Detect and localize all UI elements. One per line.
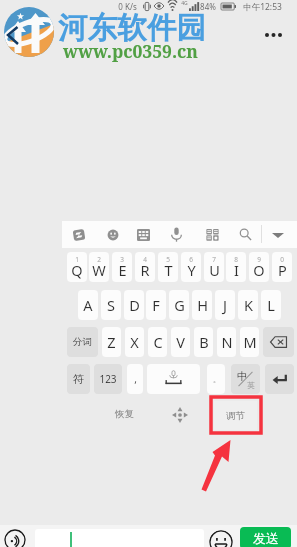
button[interactable]: Voice input — [163, 221, 189, 248]
staticText: 2 — [97, 255, 101, 264]
button[interactable]: E — [112, 252, 132, 282]
button[interactable]: M — [240, 327, 259, 357]
staticText: O — [253, 260, 265, 280]
button[interactable]: 恢复 — [108, 404, 140, 424]
staticText: P — [278, 260, 287, 280]
staticText: 河东软件园 — [58, 10, 206, 47]
button[interactable]: comma — [127, 364, 143, 394]
button[interactable]: D — [124, 290, 144, 320]
button[interactable]: U — [204, 252, 224, 282]
button[interactable]: I — [226, 252, 246, 282]
button[interactable]: G — [169, 290, 189, 320]
staticText: 英 — [247, 381, 255, 390]
button[interactable]: Backspace — [263, 327, 294, 357]
button[interactable]: L — [261, 290, 281, 320]
button[interactable]: period — [207, 364, 225, 394]
staticText: D — [129, 295, 140, 315]
staticText: 发送 — [253, 530, 279, 546]
staticText: 3 — [120, 255, 124, 264]
staticText: 。 — [213, 375, 220, 384]
staticText: B — [199, 332, 209, 352]
staticText: C — [153, 332, 163, 352]
staticText: 84% — [200, 1, 216, 12]
button[interactable]: 调节 — [214, 401, 257, 430]
button[interactable]: K — [238, 290, 258, 320]
button[interactable]: 发送 — [240, 527, 291, 547]
staticText: X — [130, 332, 139, 352]
staticText: 符 — [73, 372, 84, 386]
staticText: A — [83, 295, 93, 315]
button[interactable]: O — [249, 252, 269, 282]
staticText: 4 — [143, 255, 147, 264]
staticText: 5 — [166, 255, 170, 264]
staticText: 0 — [280, 255, 284, 264]
staticText: 中 — [237, 370, 248, 383]
staticText: M — [243, 332, 257, 352]
button[interactable]: Space — [147, 364, 200, 394]
button[interactable]: Sogou — [66, 221, 92, 248]
button[interactable]: Move keyboard — [168, 403, 192, 426]
staticText: R — [140, 260, 150, 280]
button[interactable]: More options — [256, 22, 288, 50]
button[interactable]: N — [217, 327, 236, 357]
button[interactable]: F — [146, 290, 166, 320]
button[interactable] — [35, 529, 204, 547]
button[interactable]: 符号 — [67, 364, 90, 394]
button[interactable]: Y — [181, 252, 201, 282]
button[interactable]: Q — [67, 252, 87, 282]
button[interactable]: R — [135, 252, 155, 282]
staticText: J — [223, 295, 227, 315]
staticText: , — [134, 372, 137, 386]
button[interactable]: Search — [232, 221, 258, 248]
button[interactable]: P — [272, 252, 292, 282]
button[interactable]: W — [89, 252, 109, 282]
staticText: W — [92, 260, 106, 280]
staticText: 恢复 — [115, 408, 134, 420]
staticText: F — [152, 295, 160, 315]
staticText: H — [197, 295, 208, 315]
button[interactable]: Hide keyboard — [265, 221, 291, 248]
button[interactable]: Apps — [199, 221, 225, 248]
button[interactable]: Keyboard layout — [130, 221, 156, 248]
button[interactable]: V — [171, 327, 190, 357]
staticText: 调节 — [226, 410, 245, 422]
button[interactable]: T — [158, 252, 178, 282]
button[interactable]: H — [192, 290, 212, 320]
button[interactable]: Emoji — [209, 530, 233, 547]
staticText: G — [174, 295, 185, 315]
button[interactable]: Emoji — [100, 221, 126, 248]
button[interactable]: A — [78, 290, 98, 320]
staticText: N — [221, 332, 233, 352]
staticText: I — [234, 260, 239, 280]
staticText: Y — [187, 260, 196, 280]
staticText: S — [107, 295, 115, 315]
staticText: E — [118, 260, 127, 280]
button[interactable]: S — [101, 290, 121, 320]
button[interactable]: Z — [102, 327, 121, 357]
staticText: 4G — [181, 0, 188, 7]
staticText: U — [209, 260, 220, 280]
staticText: 6 — [189, 255, 193, 264]
button[interactable]: Enter — [265, 364, 294, 394]
button[interactable]: 中英文切换 — [231, 364, 260, 394]
staticText: 7 — [212, 255, 216, 264]
staticText: 8 — [234, 255, 238, 264]
staticText: K — [244, 295, 253, 315]
button[interactable]: C — [148, 327, 167, 357]
staticText: Q — [71, 260, 83, 280]
button[interactable]: X — [125, 327, 144, 357]
staticText: 9 — [257, 255, 261, 264]
button[interactable]: Voice message — [4, 529, 26, 547]
staticText: 123 — [99, 372, 117, 386]
staticText: 1 — [75, 255, 79, 264]
staticText: Z — [107, 332, 116, 352]
staticText: 分词 — [73, 336, 92, 348]
button[interactable]: J — [215, 290, 235, 320]
staticText: 中午12:53 — [243, 1, 282, 13]
button[interactable]: 分词 — [67, 327, 98, 357]
staticText: L — [267, 295, 275, 315]
button[interactable]: 123 — [94, 364, 122, 394]
staticText: www.pc0359.cn — [63, 39, 198, 63]
staticText: T — [164, 260, 173, 280]
button[interactable]: B — [194, 327, 213, 357]
